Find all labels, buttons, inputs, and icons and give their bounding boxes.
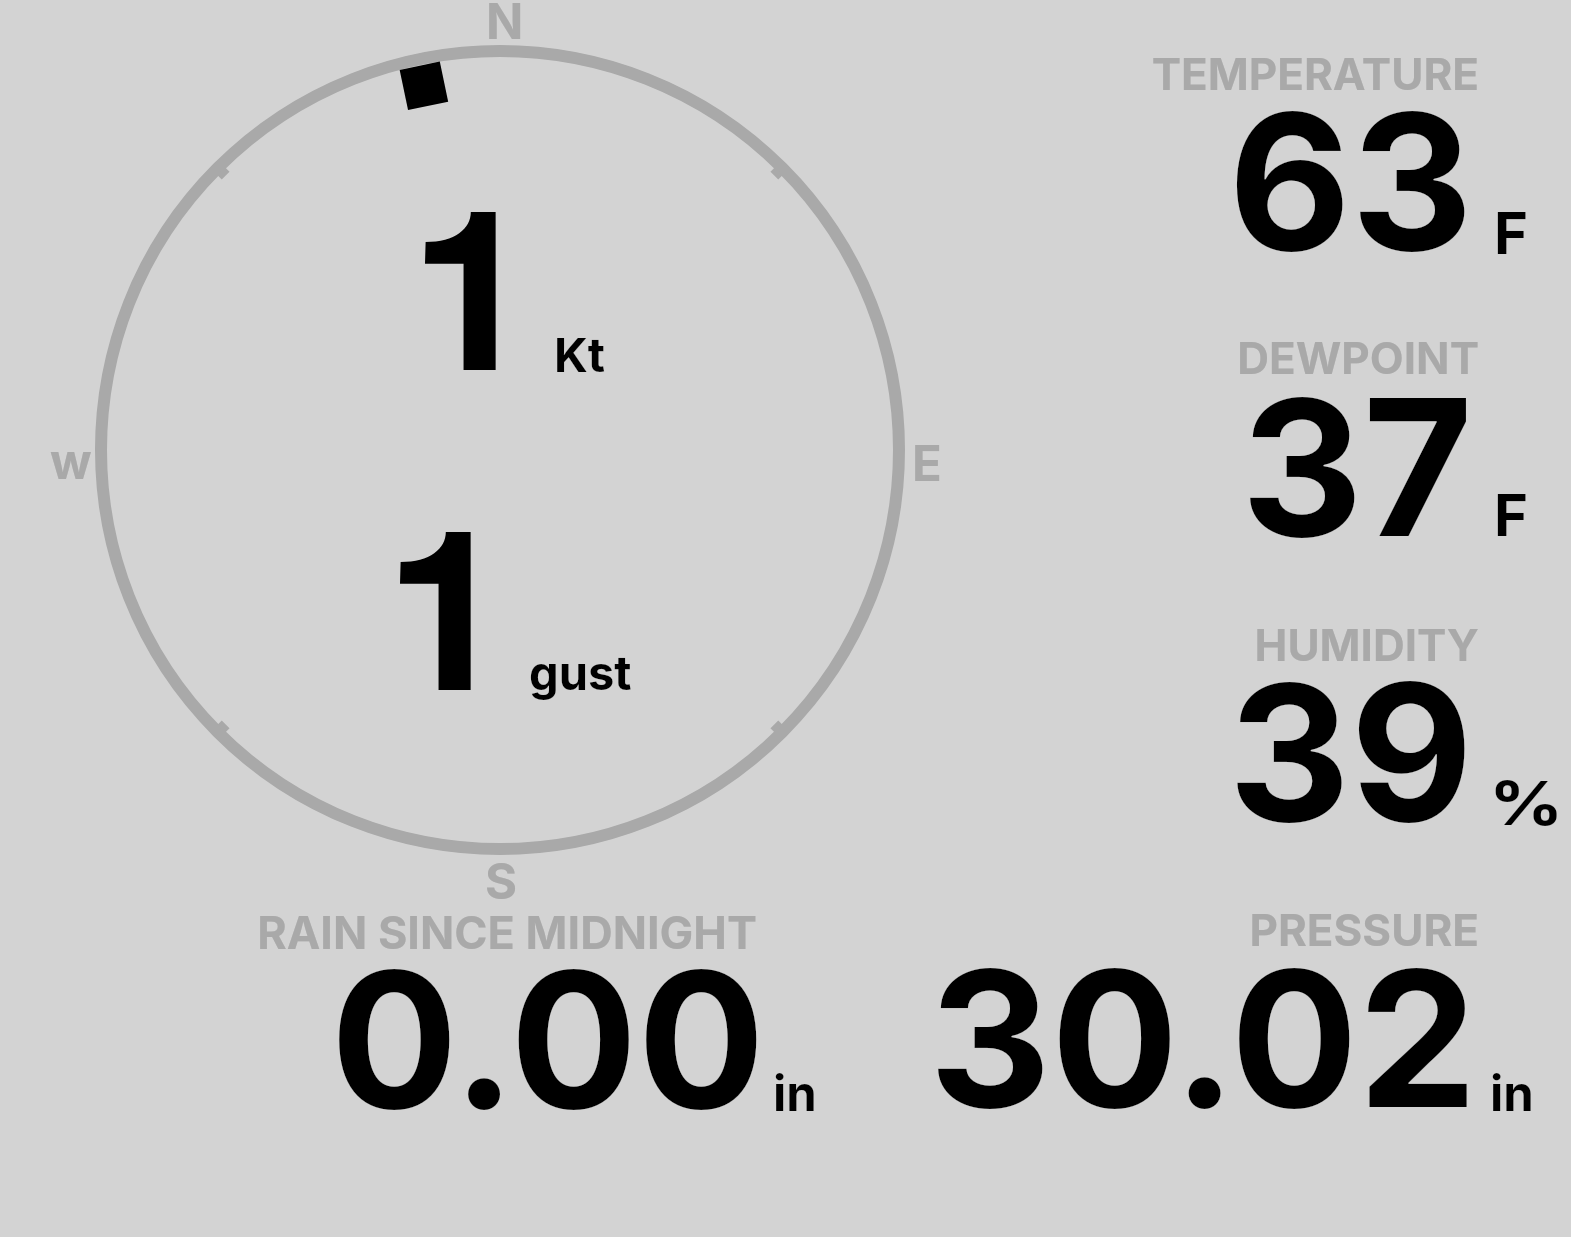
staticText: 63 [573,67,1473,388]
staticText: Kt [554,326,606,383]
staticText: in [1490,1064,1534,1123]
staticText: gust [529,644,632,701]
staticText: HUMIDITY [579,618,1479,693]
staticText: % [1489,767,1563,840]
button[interactable]: Wind direction and speed rose, 1 knot, g… [88,38,912,862]
button[interactable] [1090,610,1560,865]
staticText: DEWPOINT [579,331,1479,406]
staticText: 0.00 [0,925,765,1237]
staticText: S [485,852,518,911]
staticText: TEMPERATURE [579,47,1479,122]
staticText: PRESSURE [579,903,1479,978]
staticText: 37 [573,353,1473,674]
staticText: RAIN SINCE MIDNIGHT [0,905,757,982]
staticText: E [912,434,942,493]
staticText: F [1494,198,1529,268]
staticText: 39 [573,638,1473,959]
staticText: w [50,432,92,491]
button[interactable] [250,895,830,1125]
staticText: N [486,0,524,51]
staticText: 30.02 [577,924,1477,1237]
button[interactable] [1090,40,1560,300]
button[interactable] [920,895,1545,1125]
button[interactable] [1090,325,1560,580]
staticText: F [1494,480,1529,550]
staticText: in [773,1064,817,1123]
